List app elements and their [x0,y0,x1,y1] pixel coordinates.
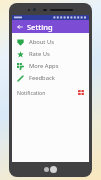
button[interactable]: About Us [12,36,89,48]
staticText: About Us [29,38,54,46]
button[interactable]: More Apps [12,60,89,72]
staticText: Feedback [29,74,55,82]
button[interactable]: Notification [17,86,84,98]
staticText: Notification [17,89,78,96]
staticText: Rate Us [29,50,50,58]
button[interactable]: Feedback [12,72,89,84]
button[interactable]: Back [15,22,24,31]
other: Notification toggle [78,90,84,95]
staticText: Setting [27,22,53,32]
staticText: More Apps [29,62,59,70]
button[interactable]: Rate Us [12,48,89,60]
